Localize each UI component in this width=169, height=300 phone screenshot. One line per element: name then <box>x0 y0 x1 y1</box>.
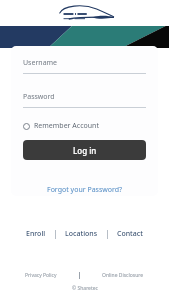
staticText: © Sharetec <box>72 285 98 292</box>
staticText: Online Disclosure <box>102 272 144 279</box>
button[interactable]: Contact <box>117 229 143 239</box>
staticText: Privacy Policy <box>25 272 57 279</box>
other: Credit Union logo <box>56 3 114 23</box>
staticText: Forgot your Password? <box>47 185 123 195</box>
button[interactable]: Log in <box>23 140 146 160</box>
staticText: Locations <box>65 229 98 239</box>
button[interactable]: Locations <box>65 229 98 239</box>
staticText: Enroll <box>26 229 46 239</box>
button[interactable]: Online Disclosure <box>102 272 144 279</box>
staticText: Log in <box>73 145 97 156</box>
button[interactable]: Enroll <box>26 229 46 239</box>
button[interactable]: Remember Account <box>23 119 146 133</box>
staticText: Contact <box>117 229 143 239</box>
staticText: Password <box>23 92 55 102</box>
button[interactable]: Forgot your Password? <box>47 185 123 195</box>
staticText: Remember Account <box>34 121 99 131</box>
button[interactable]: Privacy Policy <box>25 272 57 279</box>
staticText: Username <box>23 58 58 68</box>
